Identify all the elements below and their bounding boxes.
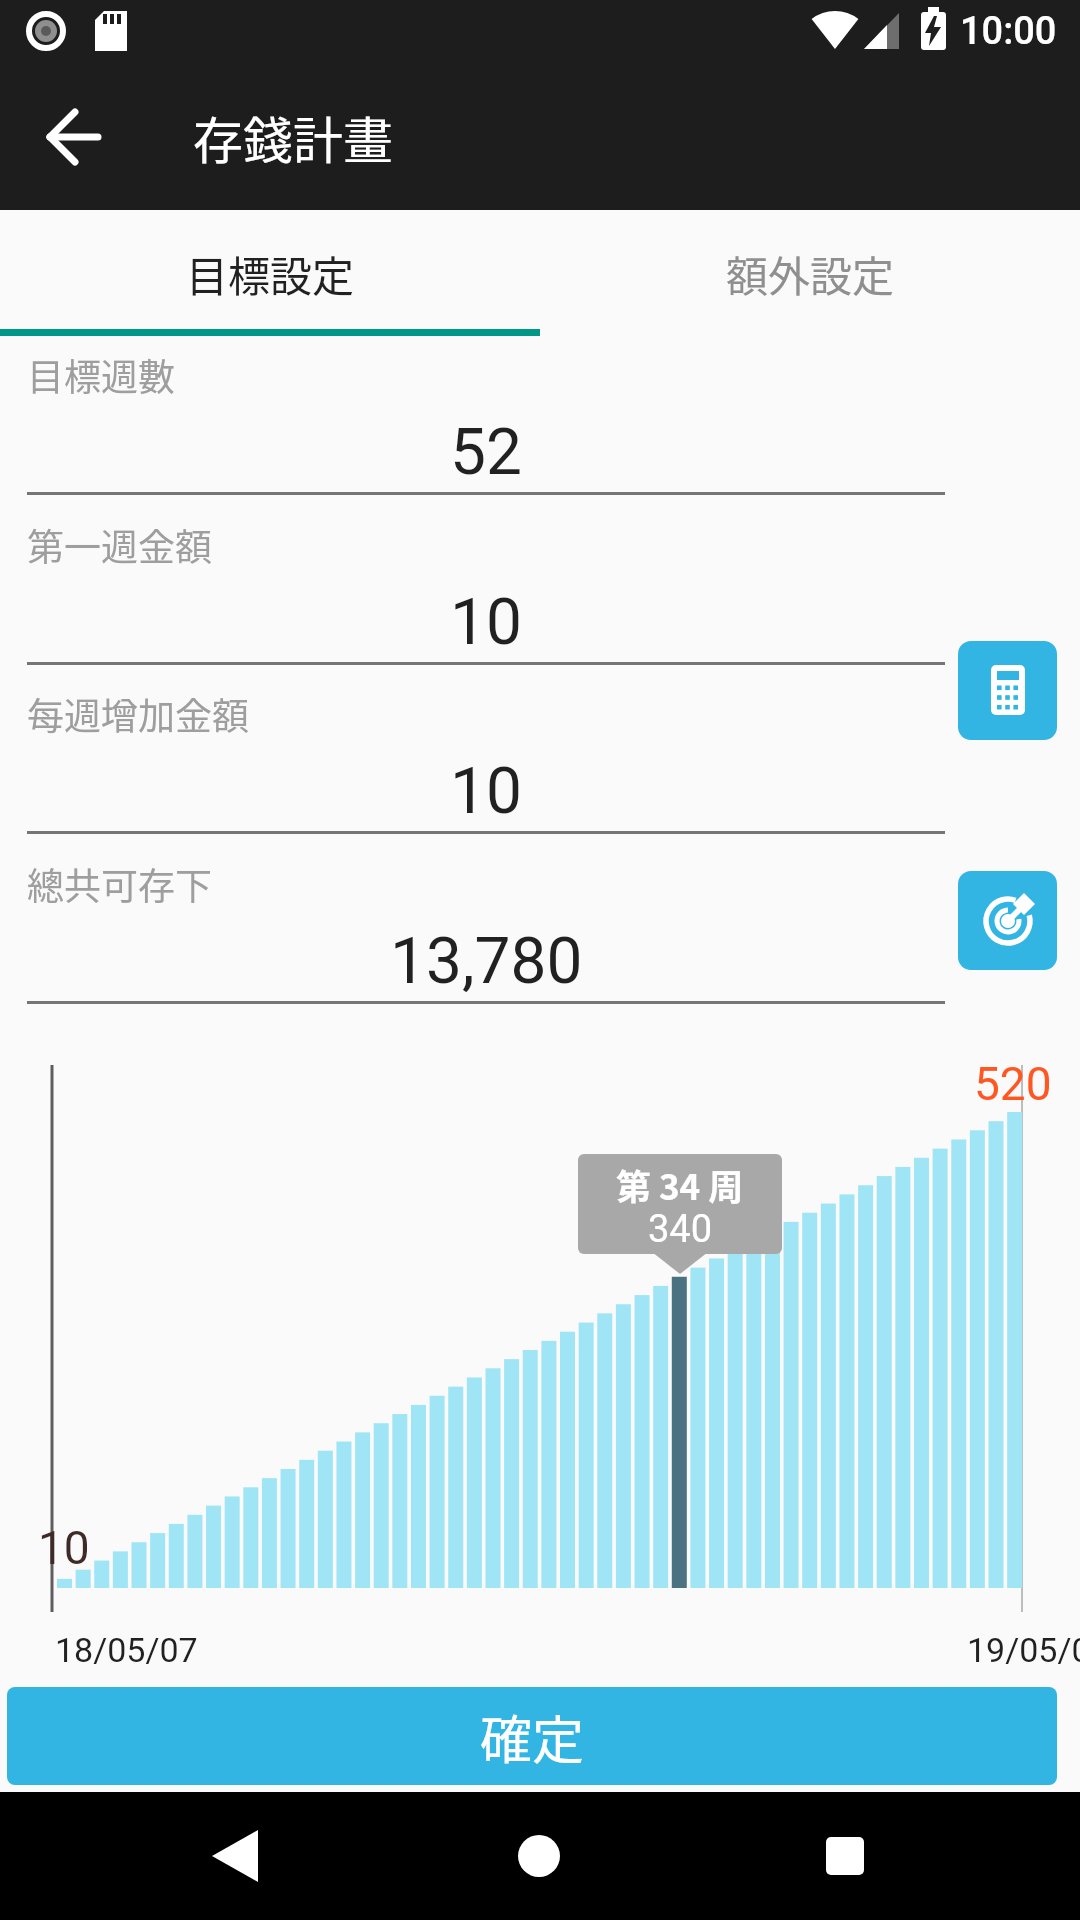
staticText: 第一週金額 — [27, 518, 212, 572]
staticText: 10 — [450, 585, 522, 660]
staticText: 目標設定 — [186, 243, 355, 304]
staticText: 10 — [38, 1521, 90, 1575]
staticText: 目標週數 — [27, 348, 175, 402]
staticText: 存錢計畫 — [193, 101, 393, 173]
staticText: 13,780 — [390, 924, 583, 999]
staticText: 52 — [450, 415, 522, 490]
button[interactable] — [797, 1808, 893, 1904]
staticText: 第 34 周 — [616, 1159, 744, 1210]
staticText: 總共可存下 — [27, 857, 212, 911]
button[interactable] — [491, 1808, 587, 1904]
staticText: 18/05/07 — [55, 1630, 198, 1670]
staticText: 每週增加金額 — [27, 687, 249, 741]
button[interactable]: 目標設定 — [0, 210, 540, 336]
button[interactable] — [25, 89, 121, 185]
staticText: 520 — [974, 1057, 1052, 1111]
staticText: 19/05/07 — [967, 1630, 1080, 1670]
button[interactable] — [958, 641, 1057, 740]
button[interactable]: 額外設定 — [540, 210, 1080, 336]
staticText: 額外設定 — [726, 243, 895, 304]
staticText: 10:00 — [960, 9, 1057, 54]
staticText: 340 — [648, 1207, 713, 1252]
staticText: 10 — [450, 754, 522, 829]
button[interactable]: 確定 — [7, 1687, 1057, 1785]
button[interactable] — [188, 1808, 284, 1904]
staticText: 確定 — [480, 1699, 585, 1774]
button[interactable] — [958, 871, 1057, 970]
